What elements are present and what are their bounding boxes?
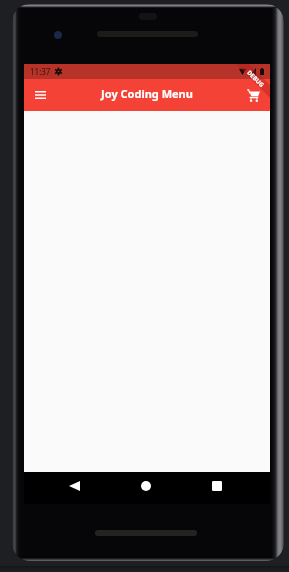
- staticText: Joy Coding Menu: [101, 86, 193, 101]
- button[interactable]: Home: [133, 473, 159, 499]
- button[interactable]: Back: [61, 473, 87, 499]
- button[interactable]: Shopping cart: [239, 81, 267, 109]
- staticText: DEBUG: [245, 69, 266, 89]
- button[interactable]: Recent apps: [204, 473, 230, 499]
- staticText: 11:37: [30, 66, 51, 77]
- button[interactable]: Open navigation menu: [26, 81, 54, 109]
